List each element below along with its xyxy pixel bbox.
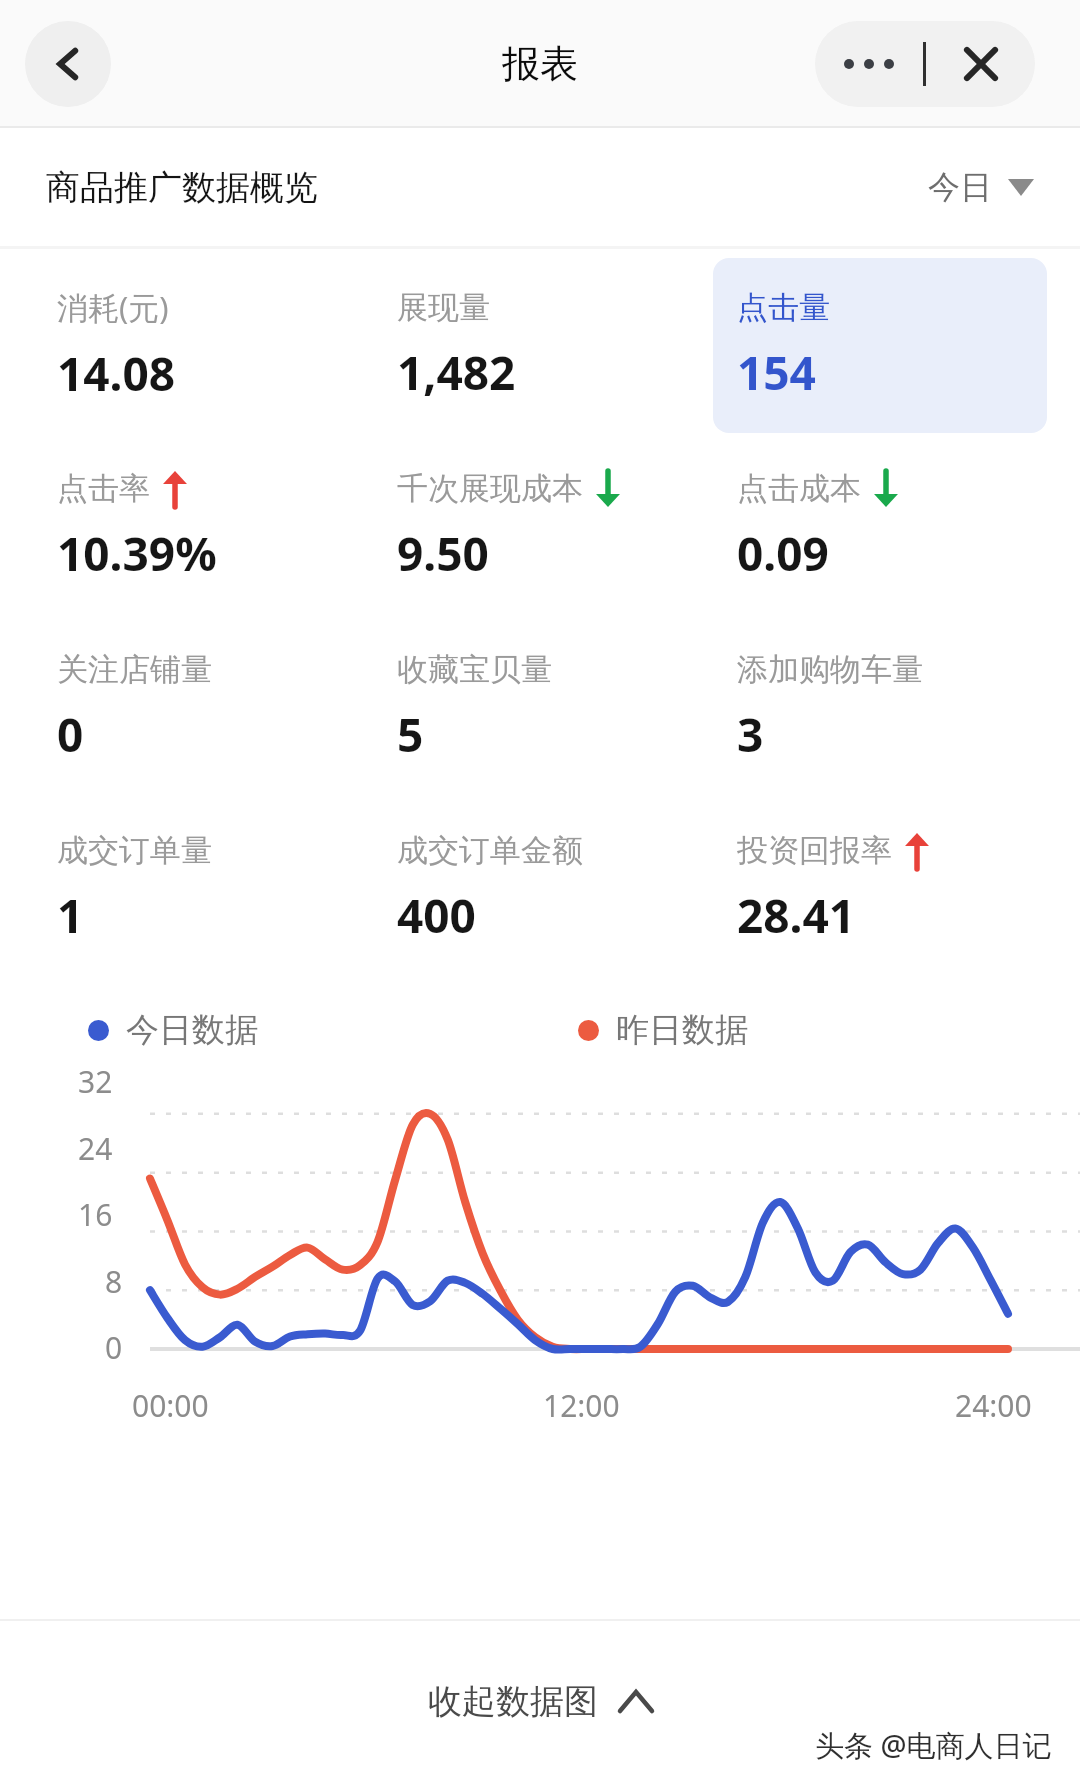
button[interactable]: 消耗(元): [33, 258, 367, 433]
staticText: 1: [57, 884, 84, 947]
button[interactable]: 成交订单金额: [373, 801, 707, 976]
staticText: 收起数据图: [428, 1680, 598, 1723]
staticText: 14.08: [57, 342, 176, 405]
staticText: 消耗(元): [57, 286, 169, 328]
button[interactable]: 今日数据: [88, 1009, 258, 1051]
staticText: 1,482: [397, 341, 516, 404]
staticText: 昨日数据: [616, 1009, 748, 1051]
staticText: 12:00: [543, 1385, 620, 1426]
staticText: 8: [105, 1261, 123, 1302]
button[interactable]: 收起数据图: [428, 1680, 652, 1723]
staticText: 10.39%: [57, 522, 217, 585]
staticText: 商品推广数据概览: [46, 166, 318, 209]
staticText: 成交订单量: [57, 831, 212, 870]
button[interactable]: 添加购物车量: [713, 620, 1047, 795]
button[interactable]: 点击量: [713, 258, 1047, 433]
button[interactable]: 点击率: [33, 439, 367, 614]
staticText: 今日: [928, 167, 992, 207]
staticText: 400: [397, 884, 476, 947]
staticText: 投资回报率: [737, 831, 892, 870]
staticText: 成交订单金额: [397, 831, 583, 870]
staticText: 16: [78, 1194, 113, 1235]
button[interactable]: 成交订单量: [33, 801, 367, 976]
button[interactable]: Close: [926, 21, 1035, 107]
button[interactable]: Back: [25, 21, 111, 107]
staticText: 154: [737, 341, 816, 404]
staticText: 头条 @电商人日记: [815, 1725, 1052, 1765]
staticText: 3: [737, 703, 764, 766]
button[interactable]: 投资回报率: [713, 801, 1047, 976]
staticText: 添加购物车量: [737, 650, 923, 689]
staticText: 点击成本: [737, 469, 861, 508]
staticText: 展现量: [397, 288, 490, 327]
staticText: 关注店铺量: [57, 650, 212, 689]
staticText: 24:00: [955, 1385, 1032, 1426]
staticText: 收藏宝贝量: [397, 650, 552, 689]
button[interactable]: 点击成本: [713, 439, 1047, 614]
staticText: 9.50: [397, 522, 489, 585]
staticText: 今日数据: [126, 1009, 258, 1051]
button[interactable]: More options: [815, 21, 923, 107]
staticText: 报表: [502, 40, 578, 88]
staticText: 点击率: [57, 469, 150, 508]
button[interactable]: 千次展现成本: [373, 439, 707, 614]
staticText: 5: [397, 703, 424, 766]
staticText: 28.41: [737, 884, 856, 947]
staticText: 0: [57, 703, 84, 766]
staticText: 点击量: [737, 288, 830, 327]
button[interactable]: 关注店铺量: [33, 620, 367, 795]
button[interactable]: 收藏宝贝量: [373, 620, 707, 795]
button[interactable]: 展现量: [373, 258, 707, 433]
button[interactable]: 今日: [928, 167, 1034, 207]
staticText: 0: [105, 1327, 123, 1368]
staticText: 千次展现成本: [397, 469, 583, 508]
staticText: 0.09: [737, 522, 829, 585]
button[interactable]: 昨日数据: [578, 1009, 748, 1051]
staticText: 32: [78, 1061, 113, 1102]
staticText: 00:00: [132, 1385, 209, 1426]
staticText: 24: [78, 1128, 113, 1169]
